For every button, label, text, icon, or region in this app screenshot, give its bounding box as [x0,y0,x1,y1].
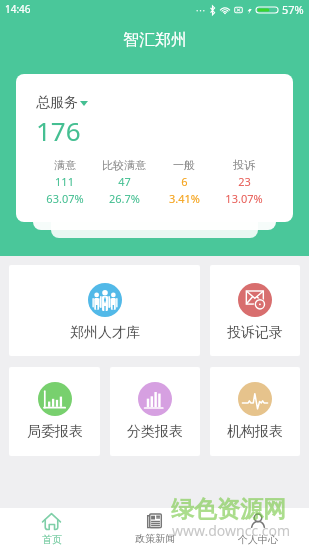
button[interactable]: 局委报表 [9,367,100,456]
staticText: 3.41% [169,191,200,206]
staticText: 14:46 [5,2,31,16]
staticText: 13.07% [225,191,263,206]
button[interactable]: 首页 [0,508,103,550]
staticText: 一般 [173,158,195,172]
staticText: 26.7% [109,191,140,206]
staticText: 57% [282,2,304,17]
staticText: 投诉记录 [227,324,283,342]
staticText: 111 [55,174,74,189]
staticText: 比较满意 [102,158,146,172]
staticText: 机构报表 [227,423,283,441]
staticText: 176 [36,113,81,148]
staticText: 郑州人才库 [70,324,140,342]
button[interactable]: 郑州人才库 [9,265,200,356]
button[interactable]: 投诉记录 [210,265,300,356]
staticText: 满意 [54,158,76,172]
staticText: 局委报表 [27,423,83,441]
staticText: 智汇郑州 [123,30,187,50]
staticText: 政策新闻 [135,532,175,545]
staticText: 个人中心 [238,533,278,546]
staticText: 6 [181,174,188,189]
staticText: 63.07% [46,191,84,206]
button[interactable]: 政策新闻 [103,508,206,550]
staticText: 绿色资源网 [171,495,286,524]
button[interactable]: 分类报表 [110,367,200,456]
staticText: 首页 [42,533,62,546]
staticText: www.downcc.com [172,521,291,540]
staticText: 23 [238,174,251,189]
staticText: 总服务 [36,94,78,112]
button[interactable]: 机构报表 [210,367,300,456]
staticText: 投诉 [233,158,255,172]
staticText: 分类报表 [127,423,183,441]
button[interactable]: 个人中心 [206,508,309,550]
staticText: 47 [118,174,131,189]
